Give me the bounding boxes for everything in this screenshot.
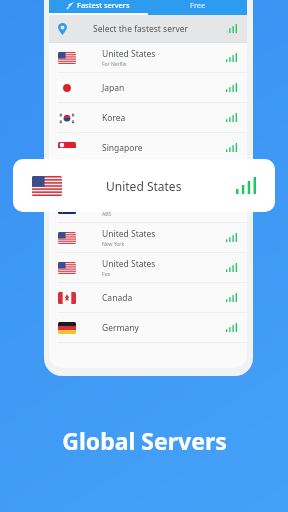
button[interactable]: United States — [49, 163, 247, 192]
staticText: Select the fastest server — [93, 23, 226, 35]
button[interactable]: United States — [49, 43, 247, 72]
button[interactable]: United States — [49, 223, 247, 252]
staticText: Canada — [102, 292, 133, 304]
staticText: Germany — [102, 322, 139, 334]
button[interactable]: United States — [13, 159, 275, 212]
staticText: United States — [106, 178, 236, 194]
button[interactable]: Korea — [49, 103, 247, 132]
staticText: Singapore — [102, 142, 143, 154]
button[interactable]: Australia — [49, 193, 247, 222]
other: Location — [58, 23, 67, 35]
staticText: For Netflix — [102, 61, 127, 68]
button[interactable]: Germany — [49, 313, 247, 342]
staticText: Japan — [102, 82, 125, 94]
staticText: United States — [102, 48, 156, 60]
button[interactable]: Canada — [49, 283, 247, 312]
button[interactable]: United States — [49, 253, 247, 282]
button[interactable]: Fastest servers — [49, 0, 148, 15]
staticText: Fox — [102, 271, 111, 278]
staticText: For Hulu — [102, 181, 123, 188]
button[interactable]: Free — [148, 0, 247, 15]
staticText: Global Servers — [62, 425, 227, 456]
staticText: United States — [102, 228, 156, 240]
button[interactable]: Japan — [49, 73, 247, 102]
staticText: Korea — [102, 112, 126, 124]
staticText: Fastest servers — [77, 0, 130, 10]
button[interactable]: Location — [49, 15, 247, 42]
button[interactable]: Singapore — [49, 133, 247, 162]
staticText: ABS — [102, 211, 112, 218]
staticText: United States — [102, 258, 156, 270]
staticText: Free — [190, 0, 206, 10]
staticText: New York — [102, 241, 125, 248]
